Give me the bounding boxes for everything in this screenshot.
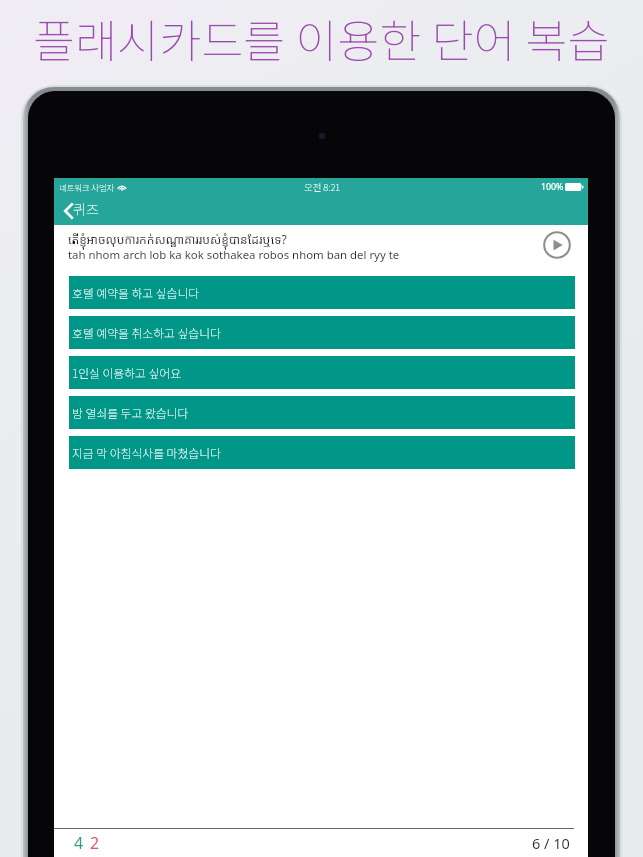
- button[interactable]: 호텔 예약을 하고 싶습니다: [69, 276, 575, 309]
- button[interactable]: 지금 막 아침식사를 마쳤습니다: [69, 436, 575, 469]
- staticText: 6 / 10: [532, 833, 570, 853]
- staticText: 퀴즈: [73, 199, 99, 219]
- staticText: 오전 8:21: [304, 180, 341, 194]
- button[interactable]: 방 열쇠를 두고 왔습니다: [69, 396, 575, 429]
- staticText: តើខ្ញុំអាចលុបការកក់សណ្ឋាគាររបស់ខ្ញុំបានដ…: [68, 231, 287, 247]
- staticText: tah nhom arch lob ka kok sothakea robos …: [68, 247, 400, 263]
- staticText: 호텔 예약을 취소하고 싶습니다: [72, 324, 221, 341]
- button[interactable]: 1인실 이용하고 싶어요: [69, 356, 575, 389]
- button[interactable]: 호텔 예약을 취소하고 싶습니다: [69, 316, 575, 349]
- button[interactable]: Play audio: [540, 228, 574, 262]
- staticText: 4: [74, 832, 84, 854]
- staticText: 플래시카드를 이용한 단어 복습: [33, 5, 610, 71]
- staticText: 네트워크 사업자: [59, 181, 115, 193]
- staticText: 방 열쇠를 두고 왔습니다: [72, 404, 189, 421]
- staticText: 100%: [541, 181, 564, 193]
- button[interactable]: Back: [61, 199, 77, 223]
- staticText: 지금 막 아침식사를 마쳤습니다: [72, 444, 221, 461]
- staticText: 호텔 예약을 하고 싶습니다: [72, 284, 200, 301]
- staticText: 1인실 이용하고 싶어요: [72, 364, 182, 381]
- staticText: 2: [90, 832, 100, 854]
